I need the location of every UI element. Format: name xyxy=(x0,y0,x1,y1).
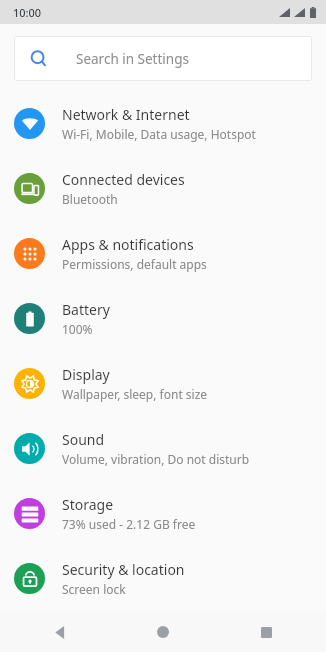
staticText: Search in Settings xyxy=(76,50,189,68)
staticText: Bluetooth xyxy=(62,191,118,207)
staticText: Sound xyxy=(62,430,105,449)
button[interactable]: Sound xyxy=(0,416,326,481)
staticText: 100% xyxy=(62,321,93,337)
staticText: Screen lock xyxy=(62,581,126,597)
staticText: Apps & notifications xyxy=(62,235,194,254)
staticText: Permissions, default apps xyxy=(62,256,207,272)
button[interactable]: Apps & notifications xyxy=(0,221,326,286)
staticText: 10:00 xyxy=(13,5,42,20)
staticText: Network & Internet xyxy=(62,105,190,124)
other: Search xyxy=(30,50,48,68)
button[interactable]: Display xyxy=(0,351,326,416)
staticText: Battery xyxy=(62,300,110,319)
button[interactable]: Recent apps xyxy=(246,612,286,652)
button[interactable]: Network & Internet xyxy=(0,91,326,156)
button[interactable]: Search xyxy=(14,36,312,81)
button[interactable]: Home xyxy=(143,612,183,652)
button[interactable]: Storage xyxy=(0,481,326,546)
staticText: 73% used - 2.12 GB free xyxy=(62,516,196,532)
staticText: Wi-Fi, Mobile, Data usage, Hotspot xyxy=(62,126,256,142)
staticText: Connected devices xyxy=(62,170,185,189)
button[interactable]: Security & location xyxy=(0,546,326,611)
staticText: Wallpaper, sleep, font size xyxy=(62,386,208,402)
button[interactable]: Back xyxy=(40,612,80,652)
staticText: Display xyxy=(62,365,110,384)
staticText: Storage xyxy=(62,495,114,514)
button[interactable]: Battery xyxy=(0,286,326,351)
button[interactable]: Connected devices xyxy=(0,156,326,221)
staticText: Volume, vibration, Do not disturb xyxy=(62,451,250,467)
staticText: Security & location xyxy=(62,560,185,579)
